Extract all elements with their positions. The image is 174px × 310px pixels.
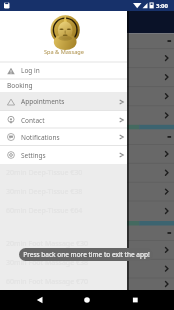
staticText: Log in: [21, 66, 40, 75]
button[interactable]: Appointments: [0, 92, 127, 111]
staticText: Booking: [7, 81, 33, 90]
staticText: Press back one more time to exit the app…: [23, 250, 150, 259]
staticText: Contact: [21, 116, 45, 125]
staticText: 30min Foot Massage €38: [6, 258, 88, 268]
staticText: 3:00: [156, 2, 168, 10]
button[interactable]: Contact: [0, 111, 127, 129]
button[interactable]: Settings: [0, 146, 127, 164]
button[interactable]: Notifications: [0, 128, 127, 146]
staticText: Settings: [21, 151, 46, 160]
staticText: Notifications: [21, 133, 60, 142]
staticText: 20min Foot Massage €30: [6, 239, 88, 249]
staticText: Appointments: [21, 97, 65, 106]
staticText: Spa & Massage: [44, 48, 84, 56]
button[interactable]: Log in: [0, 62, 127, 79]
